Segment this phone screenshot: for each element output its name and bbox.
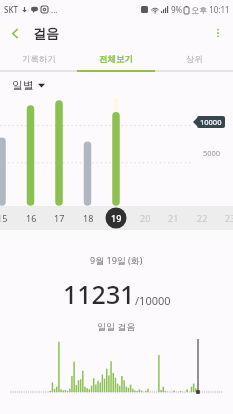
staticText: 15 (0, 212, 8, 224)
button[interactable]: 19 (106, 210, 126, 226)
button[interactable]: 16 (21, 210, 41, 226)
button[interactable]: 18 (78, 210, 98, 226)
staticText: SKT (4, 4, 18, 15)
button[interactable]: 21 (163, 210, 183, 226)
button[interactable]: More options (203, 18, 233, 48)
staticText: 9월 19일 (화) (90, 254, 143, 266)
staticText: 23 (225, 212, 233, 224)
button[interactable]: 22 (192, 210, 212, 226)
staticText: 17 (54, 212, 65, 224)
staticText: 9% (171, 4, 183, 15)
staticText: 11231 (63, 277, 135, 311)
staticText: 걸음 (33, 25, 59, 41)
staticText: 19 (111, 212, 122, 224)
staticText: 18 (83, 212, 94, 224)
staticText: 일일 걸음 (97, 320, 136, 331)
button[interactable]: 17 (49, 210, 69, 226)
button[interactable]: 일별 (12, 78, 45, 92)
button[interactable]: 전체보기 (77, 48, 155, 70)
staticText: ... (51, 4, 58, 15)
staticText: 기록하기 (22, 54, 56, 65)
button[interactable]: 20 (135, 210, 155, 226)
staticText: /10000 (135, 293, 171, 308)
button[interactable]: 15 (0, 210, 12, 226)
staticText: 상위 (186, 54, 203, 65)
staticText: 오후 10:11 (191, 4, 230, 15)
staticText: 22 (197, 212, 208, 224)
button[interactable]: 23 (220, 210, 233, 226)
staticText: 5000 (203, 148, 221, 158)
staticText: 21 (168, 212, 179, 224)
button[interactable]: 상위 (155, 48, 233, 70)
staticText: 일별 (12, 78, 34, 92)
staticText: 10000 (200, 117, 222, 127)
staticText: 전체보기 (99, 54, 133, 65)
staticText: 20 (140, 212, 151, 224)
staticText: 16 (26, 212, 37, 224)
button[interactable]: Back (0, 18, 30, 48)
button[interactable]: 기록하기 (0, 48, 77, 70)
